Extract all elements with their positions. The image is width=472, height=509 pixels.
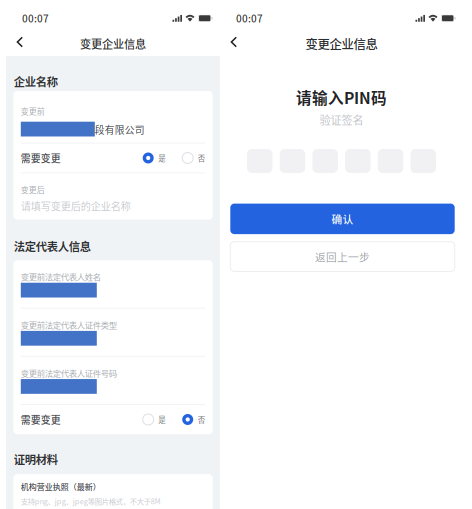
staticText: 机构营业执照（最新） [21, 481, 101, 492]
staticText: 请填写变更后的企业名称 [21, 198, 131, 213]
staticText: 变更企业信息 [305, 34, 377, 52]
staticText: 证明材料 [14, 451, 58, 467]
button[interactable]: 否 [182, 152, 205, 163]
button[interactable]: 返回 [6, 28, 39, 55]
staticText: 否 [198, 153, 205, 163]
staticText: 变更前 [21, 105, 45, 117]
staticText: 段有限公司 [95, 122, 145, 136]
staticText: 变更前法定代表人姓名 [21, 271, 101, 283]
button[interactable]: 是 [143, 414, 165, 425]
staticText: 法定代表人信息 [14, 238, 91, 254]
staticText: 变更前法定代表人证件类型 [21, 319, 117, 331]
staticText: 00:07 [22, 11, 49, 25]
staticText: 支持png、jpg、jpeg等图片格式，不大于8M [21, 496, 161, 506]
staticText: 是 [158, 414, 165, 425]
staticText: 返回上一步 [315, 249, 370, 264]
staticText: 是 [158, 153, 165, 163]
staticText: 00:07 [236, 11, 263, 25]
staticText: 验证签名 [319, 111, 363, 128]
staticText: 变更前法定代表人证件号码 [21, 367, 117, 379]
button[interactable]: 返回 [220, 28, 253, 55]
button[interactable]: 确认 [230, 204, 455, 234]
staticText: 企业名称 [14, 73, 58, 90]
staticText: 否 [198, 414, 205, 425]
button[interactable]: 否 [182, 414, 205, 425]
staticText: 确认 [331, 211, 353, 226]
button[interactable]: 是 [143, 152, 165, 163]
staticText: 需要变更 [21, 412, 61, 427]
staticText: 需要变更 [21, 151, 61, 165]
staticText: 变更后 [21, 184, 45, 195]
button[interactable]: 返回上一步 [230, 242, 455, 271]
staticText: 变更企业信息 [80, 35, 146, 52]
staticText: 请输入PIN码 [296, 86, 387, 108]
